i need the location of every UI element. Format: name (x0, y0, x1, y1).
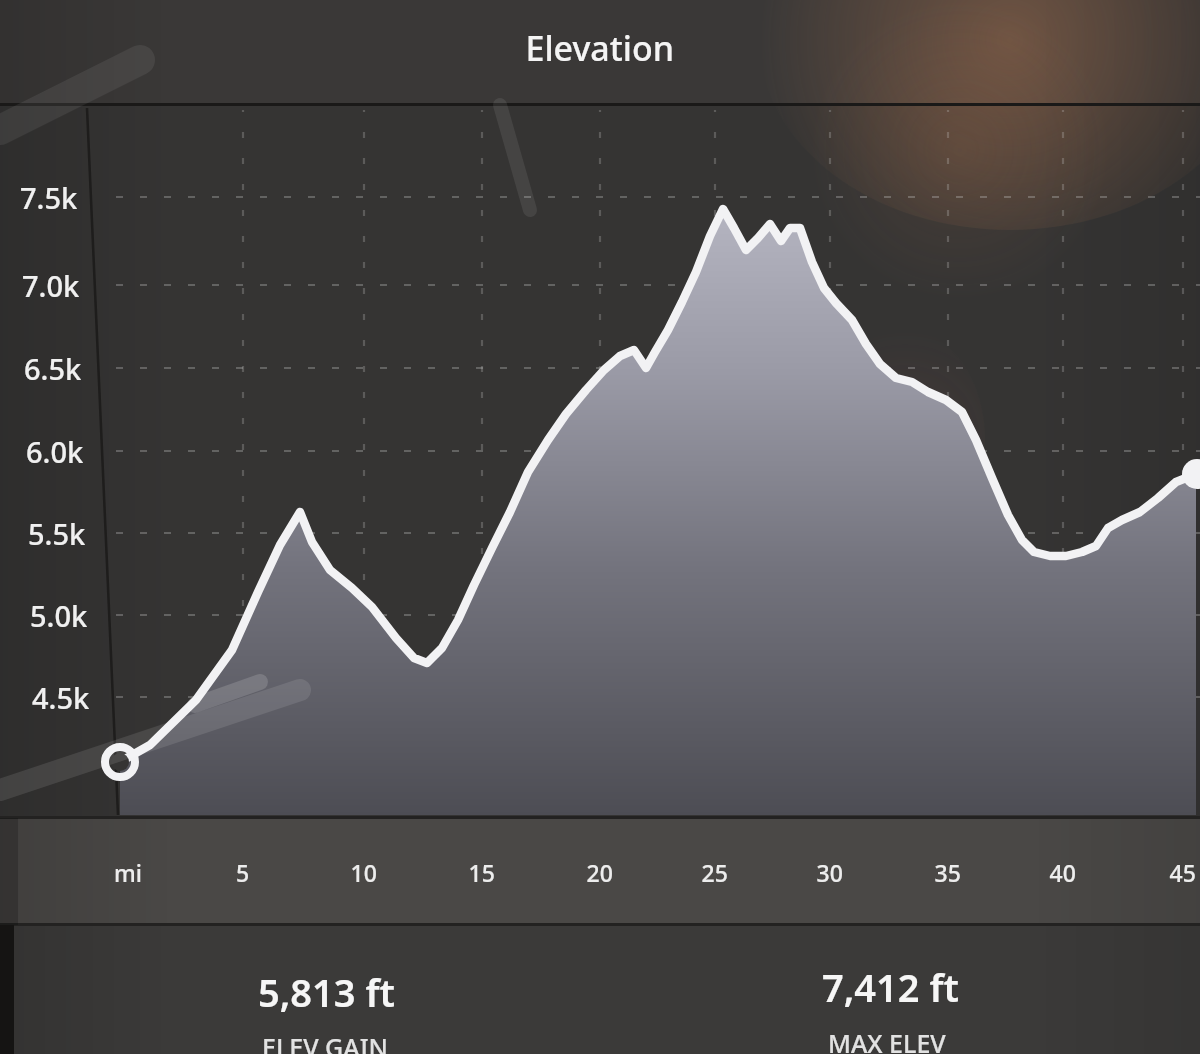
button[interactable]: Elevation profile chart (0, 0, 1200, 1054)
